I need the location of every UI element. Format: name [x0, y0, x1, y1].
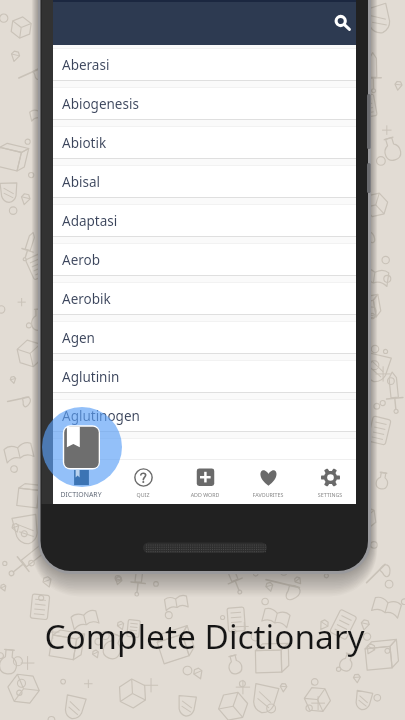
button[interactable]: Aerob [53, 243, 356, 282]
staticText: Complete Dictionary [44, 613, 365, 658]
button[interactable]: FAVOURITES [238, 459, 298, 504]
staticText: Abisal [62, 173, 100, 191]
button[interactable]: Dictionary [62, 424, 101, 471]
button[interactable]: Aglutinin [53, 360, 356, 399]
button[interactable]: Agen [53, 321, 356, 360]
button[interactable]: Abiogenesis [53, 87, 356, 126]
staticText: FAVOURITES [238, 491, 298, 498]
staticText: Aerobik [62, 290, 111, 308]
staticText: Aglutinin [62, 368, 120, 386]
staticText: SETTINGS [300, 491, 360, 498]
button[interactable]: Aglutinogen [53, 399, 356, 438]
staticText: Aberasi [62, 56, 110, 74]
button[interactable]: Aberasi [53, 48, 356, 87]
button[interactable]: DICTIONARY [51, 459, 111, 504]
staticText: Adaptasi [62, 212, 118, 230]
button[interactable]: SETTINGS [300, 459, 360, 504]
button[interactable]: Adaptasi [53, 204, 356, 243]
button[interactable]: ADD WORD [175, 459, 235, 504]
staticText: QUIZ [113, 491, 173, 498]
button[interactable] [53, 438, 356, 462]
button[interactable]: Abiotik [53, 126, 356, 165]
button[interactable]: QUIZ [113, 459, 173, 504]
button[interactable]: Search [324, 3, 362, 41]
staticText: Abiotik [62, 134, 107, 152]
staticText: Aglutinogen [62, 407, 140, 425]
staticText: DICTIONARY [51, 490, 111, 499]
button[interactable]: Abisal [53, 165, 356, 204]
button[interactable]: Aerobik [53, 282, 356, 321]
staticText: Abiogenesis [62, 95, 139, 113]
staticText: Agen [62, 329, 95, 347]
staticText: ADD WORD [175, 491, 235, 498]
staticText: Aerob [62, 251, 101, 269]
